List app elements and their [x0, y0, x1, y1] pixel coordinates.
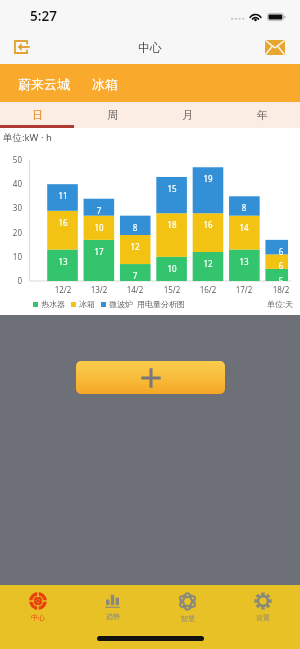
staticText: 12 — [196, 258, 220, 269]
staticText: 12 — [123, 241, 147, 252]
staticText: 中心 — [138, 40, 162, 55]
staticText: 11 — [51, 190, 75, 201]
staticText: 8 — [232, 202, 256, 213]
staticText: 月 — [182, 108, 193, 122]
staticText: 6 — [269, 246, 293, 257]
staticText: 16 — [196, 219, 220, 230]
button[interactable]: 中心 — [0, 585, 75, 627]
staticText: 15/2 — [156, 284, 188, 295]
staticText: 热水器 — [41, 299, 65, 309]
staticText: 设置 — [256, 613, 270, 622]
staticText: 50 — [2, 154, 22, 165]
staticText: 13 — [51, 256, 75, 267]
staticText: 6 — [269, 260, 293, 271]
button[interactable]: Logout — [6, 32, 36, 62]
button[interactable]: 冰箱 — [92, 75, 118, 91]
button[interactable]: Add device — [76, 361, 225, 394]
staticText: 19 — [196, 173, 220, 184]
button[interactable]: 趋势 — [75, 585, 150, 627]
button[interactable]: 年 — [225, 102, 300, 128]
staticText: 日 — [32, 108, 43, 122]
staticText: 10 — [87, 222, 111, 233]
staticText: 冰箱 — [79, 299, 95, 309]
staticText: 智慧 — [181, 614, 195, 623]
staticText: 中心 — [31, 613, 45, 622]
button[interactable]: Messages — [260, 32, 290, 62]
staticText: 单位:kW · h — [3, 131, 52, 144]
staticText: 15 — [160, 183, 184, 194]
button[interactable]: 月 — [150, 102, 225, 128]
staticText: 13/2 — [83, 284, 115, 295]
staticText: 30 — [2, 202, 22, 213]
staticText: 单位:天 — [267, 298, 294, 309]
staticText: 20 — [2, 227, 22, 238]
staticText: 14 — [232, 222, 256, 233]
staticText: 16/2 — [192, 284, 224, 295]
staticText: 14/2 — [119, 284, 151, 295]
staticText: 微波炉 — [109, 299, 133, 309]
staticText: 周 — [107, 108, 118, 122]
button[interactable]: 智慧 — [150, 585, 225, 627]
staticText: 5:27 — [30, 7, 57, 25]
staticText: 7 — [87, 205, 111, 216]
staticText: 10 — [2, 251, 22, 262]
button[interactable]: 日 — [0, 102, 75, 128]
staticText: 17 — [87, 246, 111, 257]
staticText: 18 — [160, 219, 184, 230]
staticText: 趋势 — [106, 612, 120, 621]
staticText: 40 — [2, 178, 22, 189]
button[interactable]: 设置 — [225, 585, 300, 627]
staticText: 年 — [257, 108, 268, 122]
staticText: 7 — [123, 270, 147, 281]
staticText: 16 — [51, 217, 75, 228]
button[interactable]: 蔚来云城 — [18, 75, 70, 91]
staticText: 8 — [123, 222, 147, 233]
button[interactable]: 周 — [75, 102, 150, 128]
staticText: 5 — [269, 275, 293, 286]
staticText: 17/2 — [228, 284, 260, 295]
staticText: 18/2 — [265, 284, 297, 295]
staticText: 13 — [232, 256, 256, 267]
staticText: 12/2 — [47, 284, 79, 295]
staticText: 10 — [160, 263, 184, 274]
staticText: 0 — [2, 275, 22, 286]
staticText: 用电量分析图 — [137, 299, 185, 309]
